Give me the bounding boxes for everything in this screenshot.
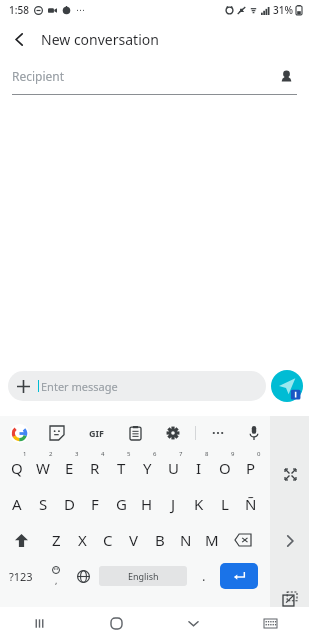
staticText: . [202, 567, 206, 585]
button[interactable]: ?123 [4, 558, 38, 594]
button[interactable]: Send [271, 370, 303, 402]
button[interactable]: Voice input [243, 422, 265, 444]
button[interactable]: Recent apps [0, 607, 78, 640]
button[interactable]: Z [44, 522, 68, 558]
staticText: 8 [205, 450, 209, 458]
staticText: 3 [75, 450, 79, 458]
staticText: , [55, 574, 58, 586]
button[interactable]: X [70, 522, 94, 558]
button[interactable]: J [160, 486, 186, 522]
button[interactable]: Ñ [238, 486, 264, 522]
staticText: B [155, 530, 165, 550]
button[interactable]: Choose contact [275, 65, 297, 87]
button[interactable]: E [56, 449, 82, 486]
staticText: Z [52, 530, 61, 550]
staticText: U [168, 458, 179, 478]
staticText: J [171, 494, 176, 514]
staticText: 6 [153, 450, 157, 458]
staticText: R [90, 458, 100, 478]
staticText: E [65, 458, 74, 478]
staticText: D [64, 494, 75, 514]
button[interactable]: U [160, 449, 186, 486]
staticText: 5 [127, 450, 131, 458]
button[interactable]: Google [8, 422, 30, 444]
button[interactable]: R [82, 449, 108, 486]
staticText: W [36, 458, 50, 478]
staticText: O [219, 458, 231, 478]
staticText: H [141, 494, 153, 514]
button[interactable]: Change language [70, 558, 96, 594]
button[interactable]: Floating keyboard [275, 591, 305, 607]
button[interactable]: More [207, 422, 229, 444]
staticText: Enter message [41, 379, 118, 394]
staticText: 7 [179, 450, 183, 458]
staticText: ?123 [9, 569, 33, 584]
button[interactable]: GIF [84, 421, 108, 445]
button[interactable]: Settings [162, 422, 184, 444]
staticText: Recipient [12, 68, 275, 84]
button[interactable]: M [200, 522, 224, 558]
button[interactable]: W [30, 449, 56, 486]
button[interactable]: English [99, 566, 187, 586]
button[interactable]: Q [4, 449, 30, 486]
button[interactable]: H [134, 486, 160, 522]
staticText: New conversation [41, 30, 159, 49]
button[interactable]: . [192, 558, 216, 594]
button[interactable]: Enter message [8, 371, 266, 401]
button[interactable]: Stickers [46, 422, 68, 444]
button[interactable]: Home [78, 607, 155, 640]
button[interactable]: Clipboard [124, 422, 146, 444]
staticText: 1:58 [9, 3, 29, 17]
button[interactable]: K [186, 486, 212, 522]
staticText: G [116, 494, 127, 514]
button[interactable]: Next [274, 525, 306, 557]
button[interactable]: N [174, 522, 198, 558]
staticText: L [221, 494, 229, 514]
staticText: GIF [89, 427, 104, 439]
button[interactable]: G [108, 486, 134, 522]
staticText: Q [11, 458, 23, 478]
button[interactable]: P [238, 449, 264, 486]
button[interactable]: T [108, 449, 134, 486]
button[interactable]: Expand keyboard [275, 459, 305, 489]
staticText: Ñ [245, 494, 257, 514]
staticText: 1 [23, 450, 27, 458]
staticText: 0 [257, 450, 261, 458]
button[interactable]: F [82, 486, 108, 522]
button[interactable]: Back [0, 20, 38, 58]
button[interactable]: D [56, 486, 82, 522]
button[interactable]: L [212, 486, 238, 522]
staticText: A [12, 494, 22, 514]
staticText: F [91, 494, 99, 514]
button[interactable]: C [96, 522, 120, 558]
staticText: C [103, 530, 113, 550]
button[interactable]: B [148, 522, 172, 558]
button[interactable]: S [30, 486, 56, 522]
staticText: P [246, 458, 256, 478]
button[interactable]: Shift [8, 522, 34, 558]
staticText: English [128, 570, 159, 582]
staticText: 31% [273, 3, 293, 17]
staticText: T [117, 458, 126, 478]
button[interactable]: Enter [220, 563, 258, 589]
button[interactable]: Hide keyboard [155, 607, 232, 640]
staticText: S [39, 494, 48, 514]
staticText: X [78, 530, 87, 550]
staticText: ⋯ [76, 5, 85, 15]
button[interactable]: Backspace [228, 522, 258, 558]
button[interactable]: I [186, 449, 212, 486]
staticText: I [196, 458, 202, 478]
staticText: 2 [49, 450, 53, 458]
button[interactable]: O [212, 449, 238, 486]
staticText: 4 [101, 450, 105, 458]
staticText: Y [143, 458, 152, 478]
button[interactable]: V [122, 522, 146, 558]
button[interactable]: A [4, 486, 30, 522]
button[interactable]: Y [134, 449, 160, 486]
button[interactable]: Emoji [44, 558, 68, 594]
button[interactable]: Keyboard layout [232, 607, 309, 640]
staticText: M [205, 530, 219, 550]
staticText: 9 [231, 450, 235, 458]
staticText: V [129, 530, 139, 550]
staticText: N [180, 530, 192, 550]
